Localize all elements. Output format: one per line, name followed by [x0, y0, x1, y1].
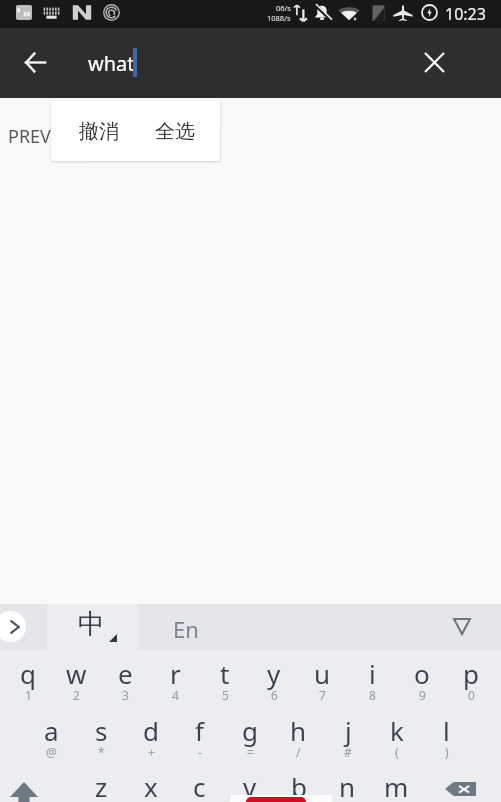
button[interactable]: Shift: [0, 769, 74, 802]
staticText: 10:23: [445, 3, 486, 25]
staticText: 5: [222, 687, 229, 703]
button[interactable]: Backspace: [427, 769, 501, 802]
staticText: k: [390, 713, 404, 748]
staticText: En: [173, 614, 199, 644]
button[interactable]: p: [446, 656, 495, 711]
staticText: s: [95, 713, 108, 748]
staticText: x: [144, 769, 158, 802]
button[interactable]: y: [249, 656, 298, 711]
staticText: d: [143, 713, 159, 748]
staticText: @: [46, 744, 57, 760]
button[interactable]: t: [200, 656, 249, 711]
button[interactable]: m: [372, 769, 421, 802]
staticText: b: [291, 769, 307, 802]
staticText: 1: [25, 687, 32, 703]
staticText: q: [20, 656, 36, 691]
button[interactable]: k: [372, 713, 421, 768]
button[interactable]: 撤消: [62, 101, 136, 161]
button[interactable]: x: [126, 769, 175, 802]
staticText: (: [395, 744, 399, 760]
staticText: 1088/s: [267, 13, 291, 23]
staticText: what: [88, 50, 135, 77]
staticText: 3: [122, 687, 129, 703]
staticText: =: [247, 744, 254, 760]
button[interactable]: i: [348, 656, 397, 711]
button[interactable]: z: [77, 769, 126, 802]
staticText: y: [267, 656, 281, 691]
staticText: n: [339, 769, 356, 802]
button[interactable]: v: [225, 769, 274, 802]
staticText: t: [220, 656, 230, 691]
button[interactable]: 全选: [133, 101, 217, 161]
button[interactable]: Navigate up: [12, 39, 58, 85]
staticText: 中: [78, 607, 105, 641]
button[interactable]: u: [298, 656, 347, 711]
staticText: 4: [172, 687, 179, 703]
staticText: v: [243, 769, 257, 802]
staticText: *: [98, 744, 105, 760]
button[interactable]: Voice input: [230, 795, 332, 802]
button[interactable]: f: [175, 713, 224, 768]
staticText: o: [414, 656, 430, 691]
staticText: h: [290, 713, 307, 748]
button[interactable]: l: [422, 713, 471, 768]
button[interactable]: b: [274, 769, 323, 802]
staticText: i: [369, 656, 376, 691]
button[interactable]: Expand toolbar: [0, 611, 26, 642]
button[interactable]: n: [323, 769, 372, 802]
staticText: r: [170, 656, 181, 691]
button[interactable]: g: [225, 713, 274, 768]
staticText: #: [344, 744, 352, 760]
button[interactable]: e: [101, 656, 150, 711]
button[interactable]: c: [175, 769, 224, 802]
button[interactable]: a: [27, 713, 76, 768]
staticText: 06/s: [276, 3, 291, 13]
staticText: a: [44, 713, 59, 748]
button[interactable]: r: [151, 656, 200, 711]
button[interactable]: w: [52, 656, 101, 711]
staticText: -: [198, 744, 202, 760]
button[interactable]: Hide keyboard: [438, 604, 484, 650]
staticText: 0: [468, 687, 475, 703]
staticText: c: [193, 769, 206, 802]
staticText: 7: [319, 687, 326, 703]
staticText: 全选: [155, 119, 195, 144]
button[interactable]: h: [274, 713, 323, 768]
staticText: ): [445, 744, 449, 760]
button[interactable]: PREV: [8, 124, 51, 149]
staticText: 9: [419, 687, 426, 703]
staticText: 6: [271, 687, 278, 703]
button[interactable]: En: [140, 604, 290, 650]
staticText: f: [195, 713, 204, 748]
button[interactable]: Clear query: [411, 39, 457, 85]
staticText: 撤消: [79, 119, 119, 144]
button[interactable]: d: [126, 713, 175, 768]
staticText: z: [95, 769, 108, 802]
button[interactable]: 中: [47, 604, 138, 650]
button[interactable]: s: [77, 713, 126, 768]
button[interactable]: o: [397, 656, 446, 711]
staticText: e: [118, 656, 133, 691]
button[interactable]: q: [3, 656, 52, 711]
staticText: 8: [369, 687, 376, 703]
staticText: g: [242, 713, 258, 748]
staticText: /: [296, 744, 301, 760]
staticText: u: [314, 656, 331, 691]
staticText: +: [148, 744, 155, 760]
staticText: m: [384, 769, 409, 802]
staticText: l: [443, 713, 450, 748]
staticText: p: [463, 656, 479, 691]
staticText: 2: [73, 687, 80, 703]
button[interactable]: j: [323, 713, 372, 768]
staticText: w: [66, 656, 87, 691]
staticText: j: [345, 713, 352, 748]
